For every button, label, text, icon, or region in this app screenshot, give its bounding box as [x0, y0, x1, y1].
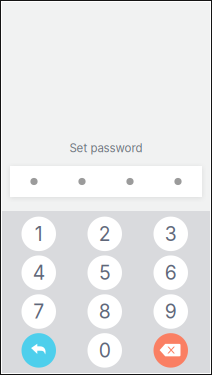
button[interactable]: 2	[87, 217, 122, 251]
staticText: 8	[99, 300, 111, 323]
staticText: 0	[99, 339, 111, 362]
button[interactable]: 6	[153, 255, 188, 290]
staticText: 4	[33, 261, 45, 284]
button[interactable]: 5	[87, 255, 122, 290]
staticText: 6	[165, 261, 177, 284]
staticText: 7	[33, 300, 44, 323]
button[interactable]: 9	[153, 294, 188, 329]
staticText: Set password	[69, 141, 142, 155]
button[interactable]: 4	[21, 255, 56, 290]
button[interactable]: 8	[87, 294, 122, 329]
staticText: 5	[99, 261, 110, 284]
button[interactable]: Delete	[153, 333, 188, 368]
staticText: 2	[99, 222, 111, 246]
button[interactable]: 3	[153, 217, 188, 251]
button[interactable]: 7	[21, 294, 56, 329]
button[interactable]: 1	[21, 217, 56, 251]
staticText: 1	[35, 222, 43, 246]
button[interactable]: 0	[87, 333, 122, 368]
button[interactable]: Back	[21, 333, 56, 368]
staticText: 9	[165, 300, 177, 323]
staticText: 3	[165, 222, 177, 246]
